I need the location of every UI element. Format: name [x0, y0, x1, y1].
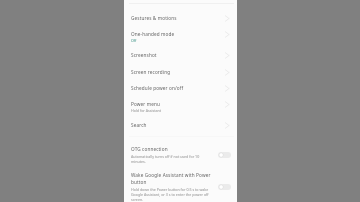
- button[interactable]: Gestures & motions: [124, 4, 237, 26]
- staticText: Schedule power on/off: [131, 85, 184, 91]
- staticText: Off: [131, 38, 137, 43]
- button[interactable]: Screenshot: [124, 46, 237, 63]
- button[interactable]: Schedule power on/off: [124, 80, 237, 96]
- staticText: Power menu: [131, 101, 160, 107]
- staticText: Wake Google Assistant with Power button: [131, 172, 211, 186]
- button[interactable]: Power menu: [124, 96, 237, 117]
- staticText: Search: [131, 122, 147, 128]
- button[interactable]: Wake Google Assistant with Power button: [124, 168, 237, 202]
- button[interactable]: Screen recording: [124, 63, 237, 80]
- staticText: Hold down the Power button for 0.5 s to …: [131, 187, 211, 202]
- staticText: One-handed mode: [131, 31, 175, 37]
- staticText: Automatically turns off if not used for …: [131, 154, 211, 164]
- button[interactable]: Toggle switch, off: [218, 152, 231, 158]
- staticText: Gestures & motions: [131, 15, 177, 21]
- staticText: Screenshot: [131, 52, 157, 58]
- button[interactable]: OTG connection: [124, 136, 237, 168]
- button[interactable]: Search: [124, 117, 237, 136]
- staticText: Screen recording: [131, 69, 171, 75]
- button[interactable]: Toggle switch, off: [218, 184, 231, 190]
- button[interactable]: One-handed mode: [124, 26, 237, 46]
- staticText: Hold for Assistant: [131, 108, 161, 113]
- staticText: OTG connection: [131, 146, 168, 152]
